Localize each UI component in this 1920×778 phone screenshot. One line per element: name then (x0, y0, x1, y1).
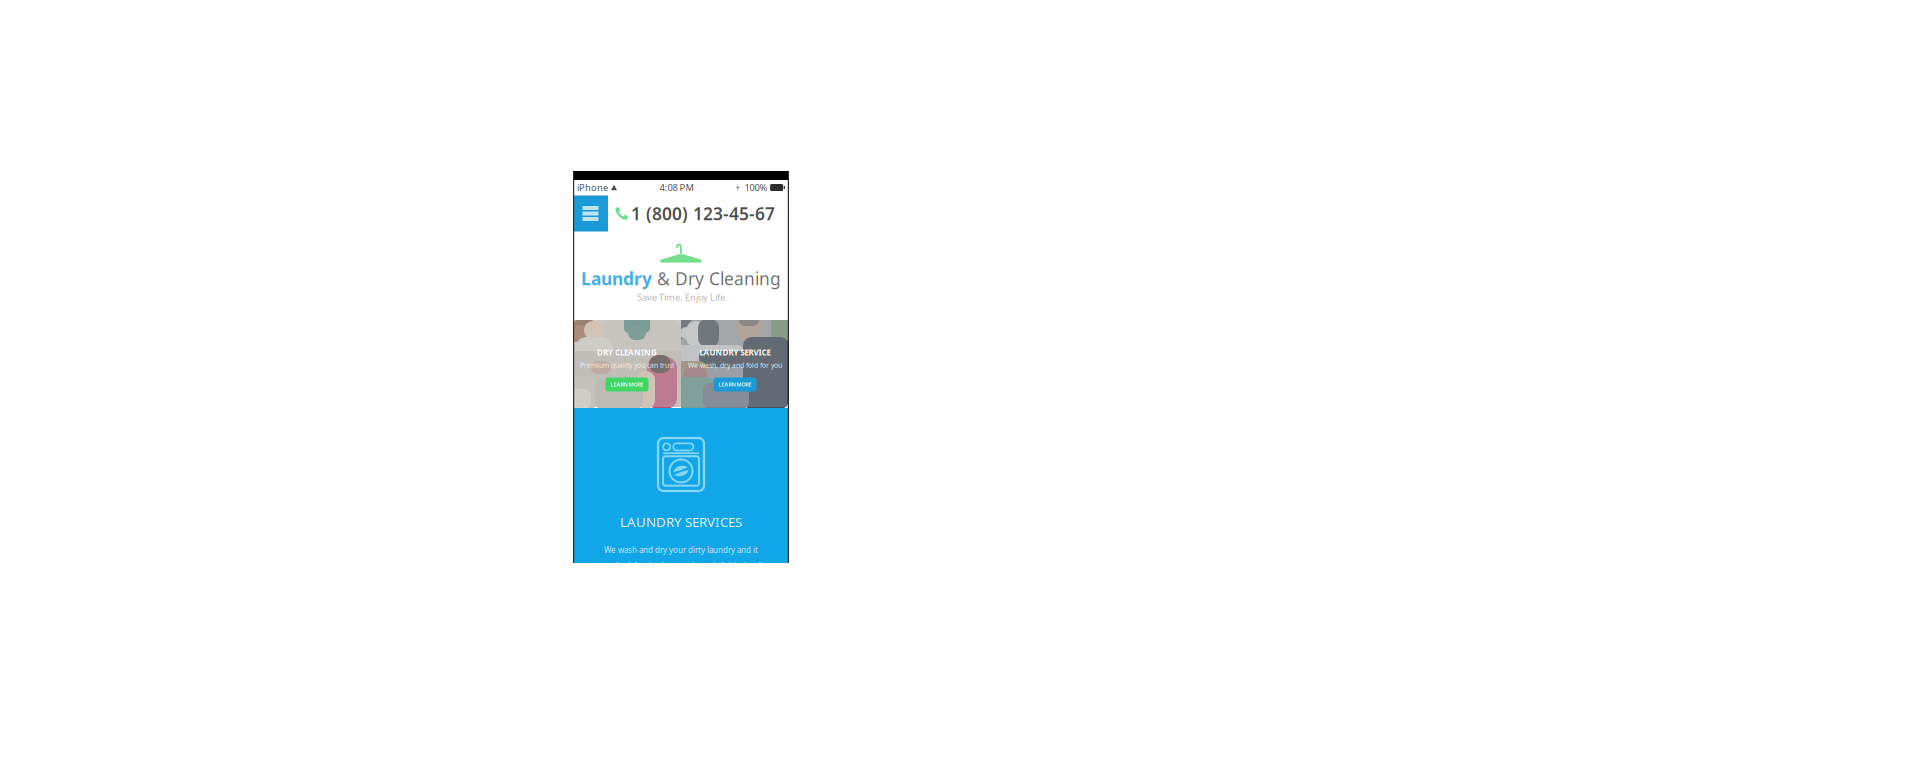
staticText: comes back fresh, clean and neatly folde… (588, 560, 774, 571)
staticText: DRY CLEANING (597, 347, 657, 358)
staticText: 100% (745, 181, 768, 194)
staticText: iPhone (577, 181, 608, 194)
staticText: LAUNDRY SERVICES (620, 513, 742, 531)
staticText: LEARN MORE (610, 381, 643, 388)
button[interactable]: Laundry (573, 232, 789, 320)
staticText: LEARN MORE (718, 381, 751, 388)
button[interactable]: LEARN MORE (713, 377, 756, 391)
staticText: 4:08 PM (659, 181, 693, 194)
staticText: Premium quality you can trust (580, 361, 674, 369)
staticText: 1 (800) 123-45-67 (631, 202, 775, 225)
button[interactable]: LEARN MORE (605, 377, 648, 391)
staticText: & Dry Cleaning (652, 267, 781, 290)
button[interactable]: 1 (800) 123-45-67 (615, 195, 775, 232)
button[interactable]: Menu (573, 195, 608, 231)
button[interactable]: LAUNDRY SERVICES (573, 408, 789, 563)
staticText: We wash, dry and fold for you (688, 361, 782, 369)
staticText: LAUNDRY SERVICE (699, 347, 770, 358)
staticText: We wash and dry your dirty laundry and i… (604, 545, 758, 555)
staticText: Laundry (581, 267, 652, 290)
staticText: Save Time. Enjoy Life (637, 291, 725, 303)
